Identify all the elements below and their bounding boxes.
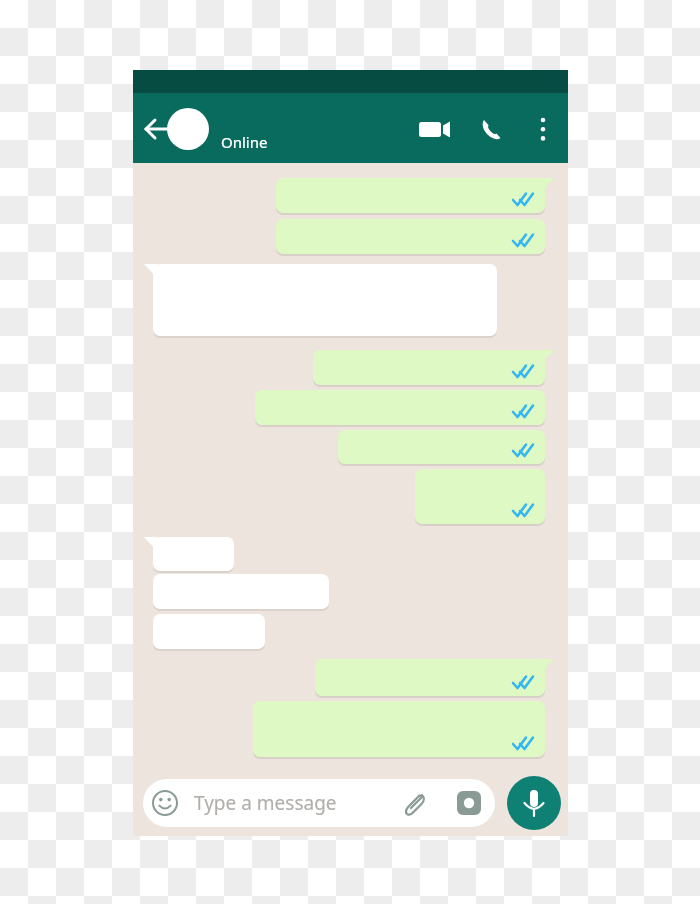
button[interactable]: Video call [410,107,458,153]
button[interactable]: More options [524,107,564,153]
button[interactable]: Camera [449,783,489,823]
button[interactable]: Attach file [398,783,440,823]
button[interactable]: Type a message [143,779,495,827]
button[interactable]: Record voice message [507,776,561,830]
button[interactable]: Contact avatar [190,107,240,152]
button[interactable]: Voice call [470,107,516,153]
button[interactable]: Contact status [240,107,330,152]
button[interactable]: Back [140,107,190,152]
